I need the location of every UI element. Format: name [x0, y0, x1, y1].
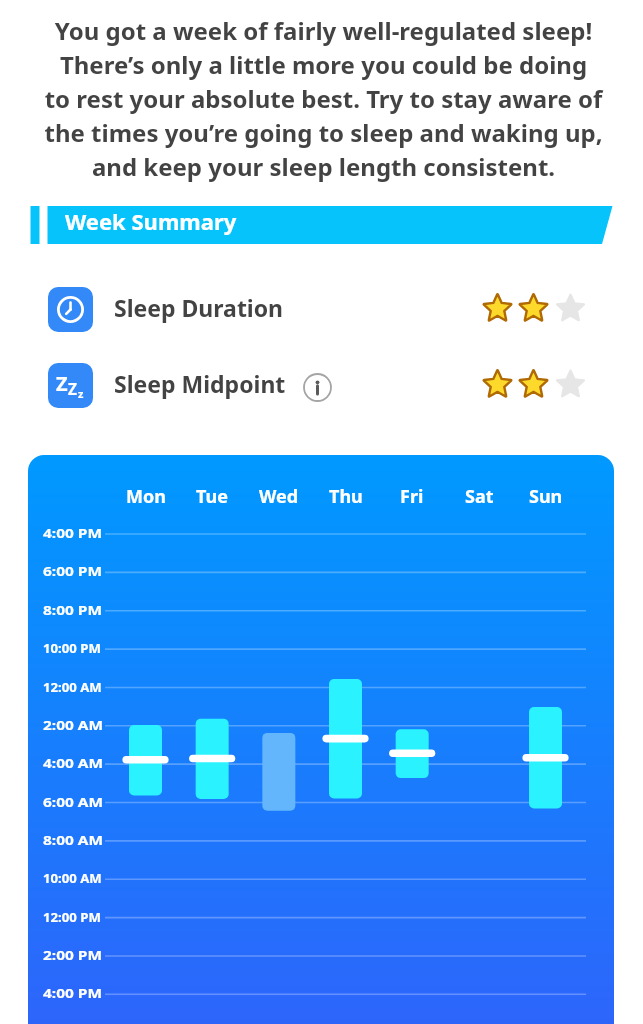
staticText: 6:00 AM [43, 793, 103, 811]
button[interactable]: Sleep duration [0, 284, 643, 334]
staticText: Thu [329, 484, 363, 509]
staticText: 2:00 PM [43, 946, 103, 964]
staticText: Sat [465, 484, 494, 509]
staticText: Z [56, 370, 68, 397]
staticText: Mon [126, 484, 166, 509]
staticText: Sleep Duration [114, 292, 284, 323]
staticText: 6:00 PM [43, 562, 103, 580]
button[interactable]: More information [303, 373, 332, 402]
staticText: Week Summary [65, 206, 237, 236]
staticText: 8:00 AM [43, 831, 103, 849]
staticText: Tue [196, 484, 228, 509]
staticText: Z [68, 378, 77, 399]
staticText: Fri [400, 484, 424, 509]
staticText: You got a week of fairly well-regulated … [36, 14, 611, 183]
other: Sleep duration [48, 287, 93, 332]
staticText: 10:00 PM [43, 639, 101, 657]
staticText: z [78, 386, 84, 401]
staticText: 4:00 PM [43, 984, 103, 1002]
staticText: Wed [259, 484, 299, 509]
staticText: 8:00 PM [43, 601, 103, 619]
staticText: 12:00 AM [43, 678, 102, 696]
staticText: 2:00 AM [43, 716, 103, 734]
staticText: Sleep Midpoint [114, 368, 286, 399]
button[interactable]: Sleep midpoint [0, 360, 643, 410]
button[interactable]: 4:00 PM [28, 455, 614, 1024]
staticText: Sun [529, 484, 563, 509]
staticText: 4:00 PM [43, 524, 103, 542]
staticText: 12:00 PM [43, 908, 101, 926]
staticText: 10:00 AM [43, 869, 102, 887]
staticText: 4:00 AM [43, 754, 103, 772]
other: Sleep midpoint [48, 363, 93, 408]
button[interactable]: Week Summary [0, 206, 643, 244]
